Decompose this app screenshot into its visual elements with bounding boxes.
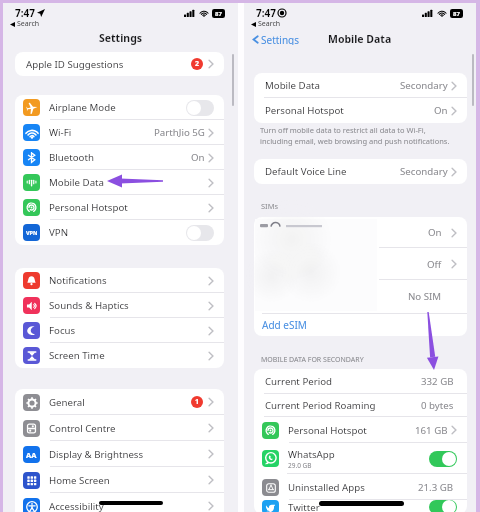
staticText: Search <box>258 19 281 29</box>
button[interactable]: No SIM <box>254 280 467 313</box>
button[interactable]: Off <box>254 248 467 280</box>
button[interactable]: Accessibility <box>15 493 224 512</box>
button[interactable]: General <box>15 389 224 415</box>
button[interactable]: On <box>429 451 457 467</box>
staticText: Search <box>17 19 40 29</box>
staticText: Secondary <box>400 79 448 92</box>
button[interactable]: Notifications <box>15 268 224 293</box>
staticText: General <box>49 396 85 409</box>
button[interactable]: Current Period Roaming <box>254 394 467 417</box>
staticText: Uninstalled Apps <box>288 481 365 494</box>
button[interactable]: Uninstalled Apps <box>254 474 467 500</box>
staticText: Settings <box>99 31 143 45</box>
staticText: Personal Hotspot <box>49 201 128 214</box>
staticText: VPN <box>26 229 38 236</box>
staticText: Mobile Data <box>328 32 392 46</box>
staticText: 29.0 GB <box>288 461 312 470</box>
staticText: Home Screen <box>49 474 110 487</box>
button[interactable]: Mobile Data <box>15 170 224 195</box>
staticText: Personal Hotspot <box>265 104 344 117</box>
staticText: Wi-Fi <box>49 126 72 139</box>
staticText: 7:47 <box>256 6 276 20</box>
button[interactable]: Personal Hotspot <box>15 195 224 220</box>
button[interactable]: Home Screen <box>15 467 224 493</box>
staticText: Notifications <box>49 274 107 287</box>
staticText: Sounds & Haptics <box>49 299 129 312</box>
staticText: Airplane Mode <box>49 101 116 114</box>
staticText: Personal Hotspot <box>288 424 367 437</box>
staticText: 2 <box>195 59 200 69</box>
staticText: Turn off mobile data to restrict all dat… <box>260 125 450 146</box>
button[interactable]: Screen Time <box>15 343 224 368</box>
button[interactable]: WhatsApp <box>254 443 467 474</box>
button[interactable]: Off <box>186 225 214 241</box>
button[interactable]: Bluetooth <box>15 145 224 170</box>
staticText: WhatsApp <box>288 448 335 461</box>
button[interactable]: Twitter <box>254 500 467 512</box>
button[interactable]: Sounds & Haptics <box>15 293 224 318</box>
staticText: On <box>428 226 442 239</box>
button[interactable]: Mobile Data <box>254 73 467 98</box>
staticText: MOBILE DATA FOR SECONDARY <box>261 355 364 365</box>
staticText: Bluetooth <box>49 151 94 164</box>
button[interactable]: Focus <box>15 318 224 343</box>
staticText: Display & Brightness <box>49 448 144 461</box>
button[interactable]: On <box>429 500 457 512</box>
button[interactable]: Personal Hotspot <box>254 417 467 443</box>
staticText: 0 bytes <box>421 399 454 412</box>
button[interactable]: Settings <box>249 31 302 47</box>
staticText: SIMs <box>261 201 279 211</box>
button[interactable]: Back to Search <box>251 19 281 29</box>
staticText: On <box>191 151 205 164</box>
staticText: 21.3 GB <box>418 481 454 494</box>
staticText: No SIM <box>408 290 442 303</box>
staticText: Control Centre <box>49 422 116 435</box>
button[interactable]: Back to Search <box>10 19 40 29</box>
button[interactable]: Apple ID Suggestions <box>15 52 224 76</box>
staticText: Off <box>427 258 442 271</box>
staticText: Twitter <box>288 501 320 512</box>
button[interactable]: VPN <box>15 220 224 245</box>
staticText: Apple ID Suggestions <box>26 58 124 71</box>
button[interactable]: Personal Hotspot <box>254 98 467 123</box>
staticText: Focus <box>49 324 76 337</box>
button[interactable]: Off <box>186 100 214 116</box>
button[interactable]: Wi-Fi <box>15 120 224 145</box>
staticText: Secondary <box>400 165 448 178</box>
button[interactable]: Control Centre <box>15 415 224 441</box>
staticText: 87 <box>215 10 222 18</box>
staticText: On <box>434 104 448 117</box>
staticText: Current Period Roaming <box>265 399 376 412</box>
staticText: Mobile Data <box>49 176 105 189</box>
staticText: Accessibility <box>49 500 104 512</box>
staticText: Default Voice Line <box>265 165 347 178</box>
staticText: Screen Time <box>49 349 105 362</box>
staticText: Mobile Data <box>265 79 321 92</box>
staticText: ParthJio 5G <box>154 126 205 139</box>
button[interactable]: On <box>254 217 467 248</box>
button[interactable]: Default Voice Line <box>254 159 467 184</box>
staticText: 1 <box>195 397 200 407</box>
staticText: 87 <box>453 10 460 18</box>
staticText: 161 GB <box>415 424 448 437</box>
staticText: 7:47 <box>15 6 35 20</box>
staticText: Settings <box>261 33 300 45</box>
staticText: Add eSIM <box>262 318 307 332</box>
staticText: Current Period <box>265 375 333 388</box>
button[interactable]: Current Period <box>254 369 467 394</box>
staticText: 332 GB <box>421 375 454 388</box>
button[interactable]: Airplane Mode <box>15 95 224 120</box>
button[interactable]: Add eSIM <box>254 313 467 336</box>
staticText: VPN <box>49 226 69 239</box>
staticText: AA <box>26 450 37 460</box>
button[interactable]: AA <box>15 441 224 467</box>
